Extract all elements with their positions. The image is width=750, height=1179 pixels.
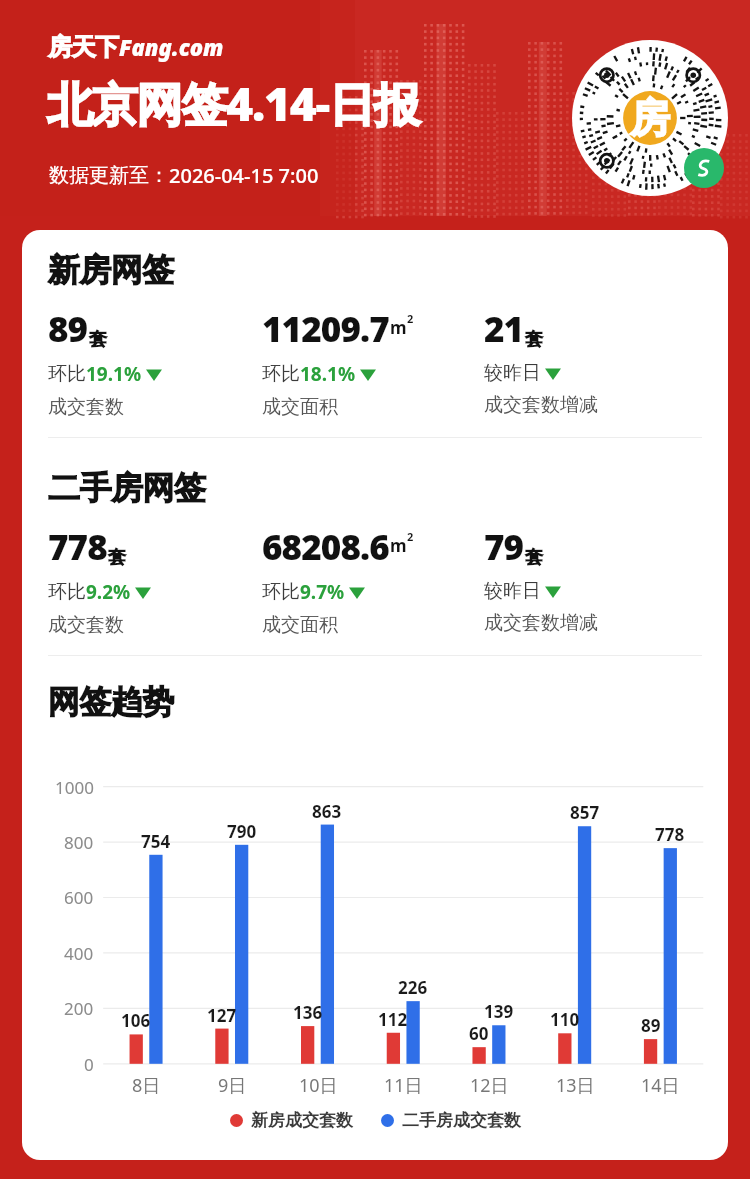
staticText: 套	[89, 328, 107, 351]
button[interactable]: 21	[484, 305, 598, 417]
staticText: 9.7%	[300, 579, 345, 605]
staticText: 新房成交套数	[251, 1110, 353, 1131]
staticText: 较昨日	[484, 361, 541, 385]
staticText: 9日	[218, 1073, 247, 1098]
button[interactable]: 房天下	[48, 32, 224, 62]
staticText: 139	[484, 1000, 514, 1023]
staticText: m	[390, 316, 407, 339]
staticText: 1000	[55, 776, 94, 799]
staticText: 套	[525, 546, 543, 569]
staticText: 863	[312, 800, 342, 823]
button[interactable]: 二手房成交套数	[381, 1110, 521, 1131]
staticText: 79	[484, 523, 524, 571]
staticText: 19.1%	[86, 361, 142, 387]
staticText: Fang.com	[119, 32, 224, 62]
staticText: 2	[407, 529, 414, 544]
staticText: 13日	[556, 1073, 595, 1098]
button[interactable]: 11209.7	[262, 305, 414, 419]
staticText: 2	[407, 311, 414, 326]
staticText: 新房网签	[48, 250, 174, 290]
staticText: 成交面积	[262, 395, 338, 419]
staticText: 112	[378, 1008, 408, 1031]
staticText: 较昨日	[484, 579, 541, 603]
button[interactable]: 新房成交套数	[230, 1110, 353, 1131]
staticText: 二手房成交套数	[402, 1110, 521, 1131]
staticText: 11209.7	[262, 305, 389, 353]
staticText: 754	[141, 830, 171, 853]
staticText: 房	[630, 93, 670, 143]
staticText: 110	[550, 1008, 580, 1031]
staticText: 成交面积	[262, 613, 338, 637]
staticText: 12日	[470, 1073, 509, 1098]
staticText: 11日	[384, 1073, 423, 1098]
button[interactable]: 68208.6	[262, 523, 414, 637]
staticText: 环比	[48, 362, 86, 386]
staticText: 800	[64, 831, 94, 854]
staticText: 68208.6	[262, 523, 389, 571]
staticText: 778	[48, 523, 107, 571]
staticText: 200	[64, 997, 94, 1020]
staticText: 0	[84, 1053, 94, 1076]
staticText: 环比	[262, 580, 300, 604]
staticText: 600	[64, 886, 94, 909]
staticText: 127	[207, 1004, 237, 1027]
staticText: 18.1%	[300, 361, 356, 387]
button[interactable]: 79	[484, 523, 598, 635]
staticText: 套	[108, 546, 126, 569]
button[interactable]: 778	[48, 523, 151, 637]
staticText: 400	[64, 942, 94, 965]
staticText: 106	[121, 1009, 151, 1032]
staticText: 9.2%	[86, 579, 131, 605]
staticText: 10日	[299, 1073, 338, 1098]
button[interactable]: 扫码打开房天下小程序	[572, 40, 728, 196]
staticText: 857	[570, 801, 600, 824]
staticText: 790	[227, 820, 257, 843]
staticText: 成交套数	[48, 395, 124, 419]
staticText: 2026-04-15 7:00	[169, 162, 319, 189]
staticText: 房天下	[48, 32, 119, 62]
staticText: 8日	[132, 1073, 161, 1098]
staticText: 成交套数增减	[484, 393, 598, 417]
staticText: 778	[655, 823, 685, 846]
staticText: 14日	[641, 1073, 680, 1098]
staticText: 226	[398, 976, 428, 999]
staticText: 60	[469, 1022, 489, 1045]
staticText: m	[390, 534, 407, 557]
staticText: 89	[48, 305, 88, 353]
staticText: 136	[293, 1001, 323, 1024]
staticText: 环比	[48, 580, 86, 604]
staticText: 套	[525, 328, 543, 351]
staticText: 成交套数	[48, 613, 124, 637]
staticText: 成交套数增减	[484, 611, 598, 635]
button[interactable]: 89	[48, 305, 162, 419]
staticText: 环比	[262, 362, 300, 386]
staticText: 北京网签4.14-日报	[47, 72, 419, 135]
staticText: 网签趋势	[48, 682, 174, 722]
staticText: 89	[641, 1014, 661, 1037]
staticText: 数据更新至：	[49, 163, 169, 188]
staticText: 21	[484, 305, 524, 353]
staticText: 二手房网签	[48, 468, 206, 508]
